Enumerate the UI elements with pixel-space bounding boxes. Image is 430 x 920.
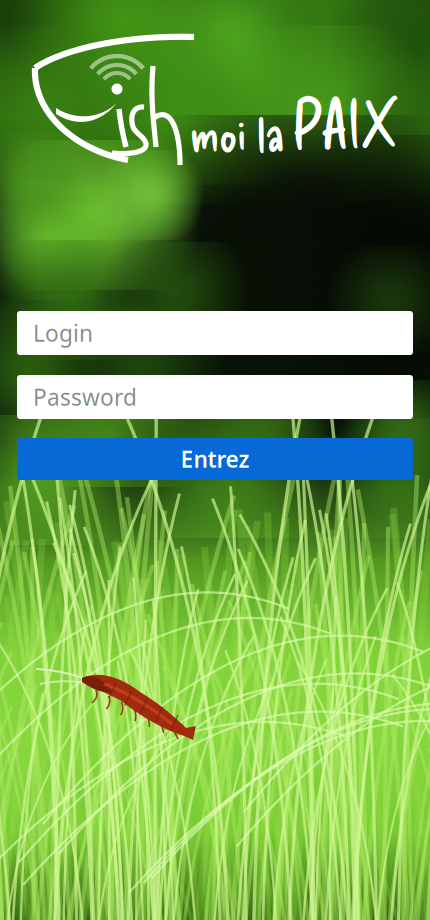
staticText: Password <box>33 382 137 412</box>
button[interactable]: Entrez <box>17 438 413 480</box>
staticText: Login <box>33 318 93 348</box>
staticText: moi la <box>190 103 285 162</box>
staticText: PAIX <box>292 82 397 162</box>
staticText: Entrez <box>180 444 249 474</box>
button[interactable]: Login <box>17 311 413 355</box>
button[interactable]: Password <box>17 375 413 419</box>
